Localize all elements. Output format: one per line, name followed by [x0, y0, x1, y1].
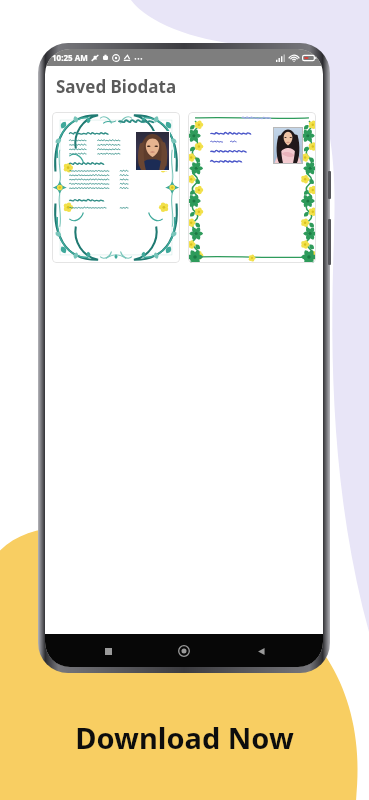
button[interactable]: Download Now — [0, 714, 369, 760]
button[interactable]: Home — [170, 637, 198, 665]
staticText: Download Now — [75, 718, 294, 757]
button[interactable]: Recent apps — [94, 637, 122, 665]
staticText: Saved Biodata — [56, 75, 177, 98]
staticText: 10:25 AM — [52, 52, 88, 63]
button[interactable] — [188, 112, 316, 263]
button[interactable]: Back — [247, 637, 275, 665]
button[interactable] — [52, 112, 180, 263]
